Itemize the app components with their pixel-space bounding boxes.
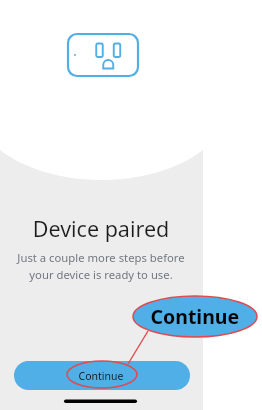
button[interactable]: Continue bbox=[14, 361, 190, 390]
